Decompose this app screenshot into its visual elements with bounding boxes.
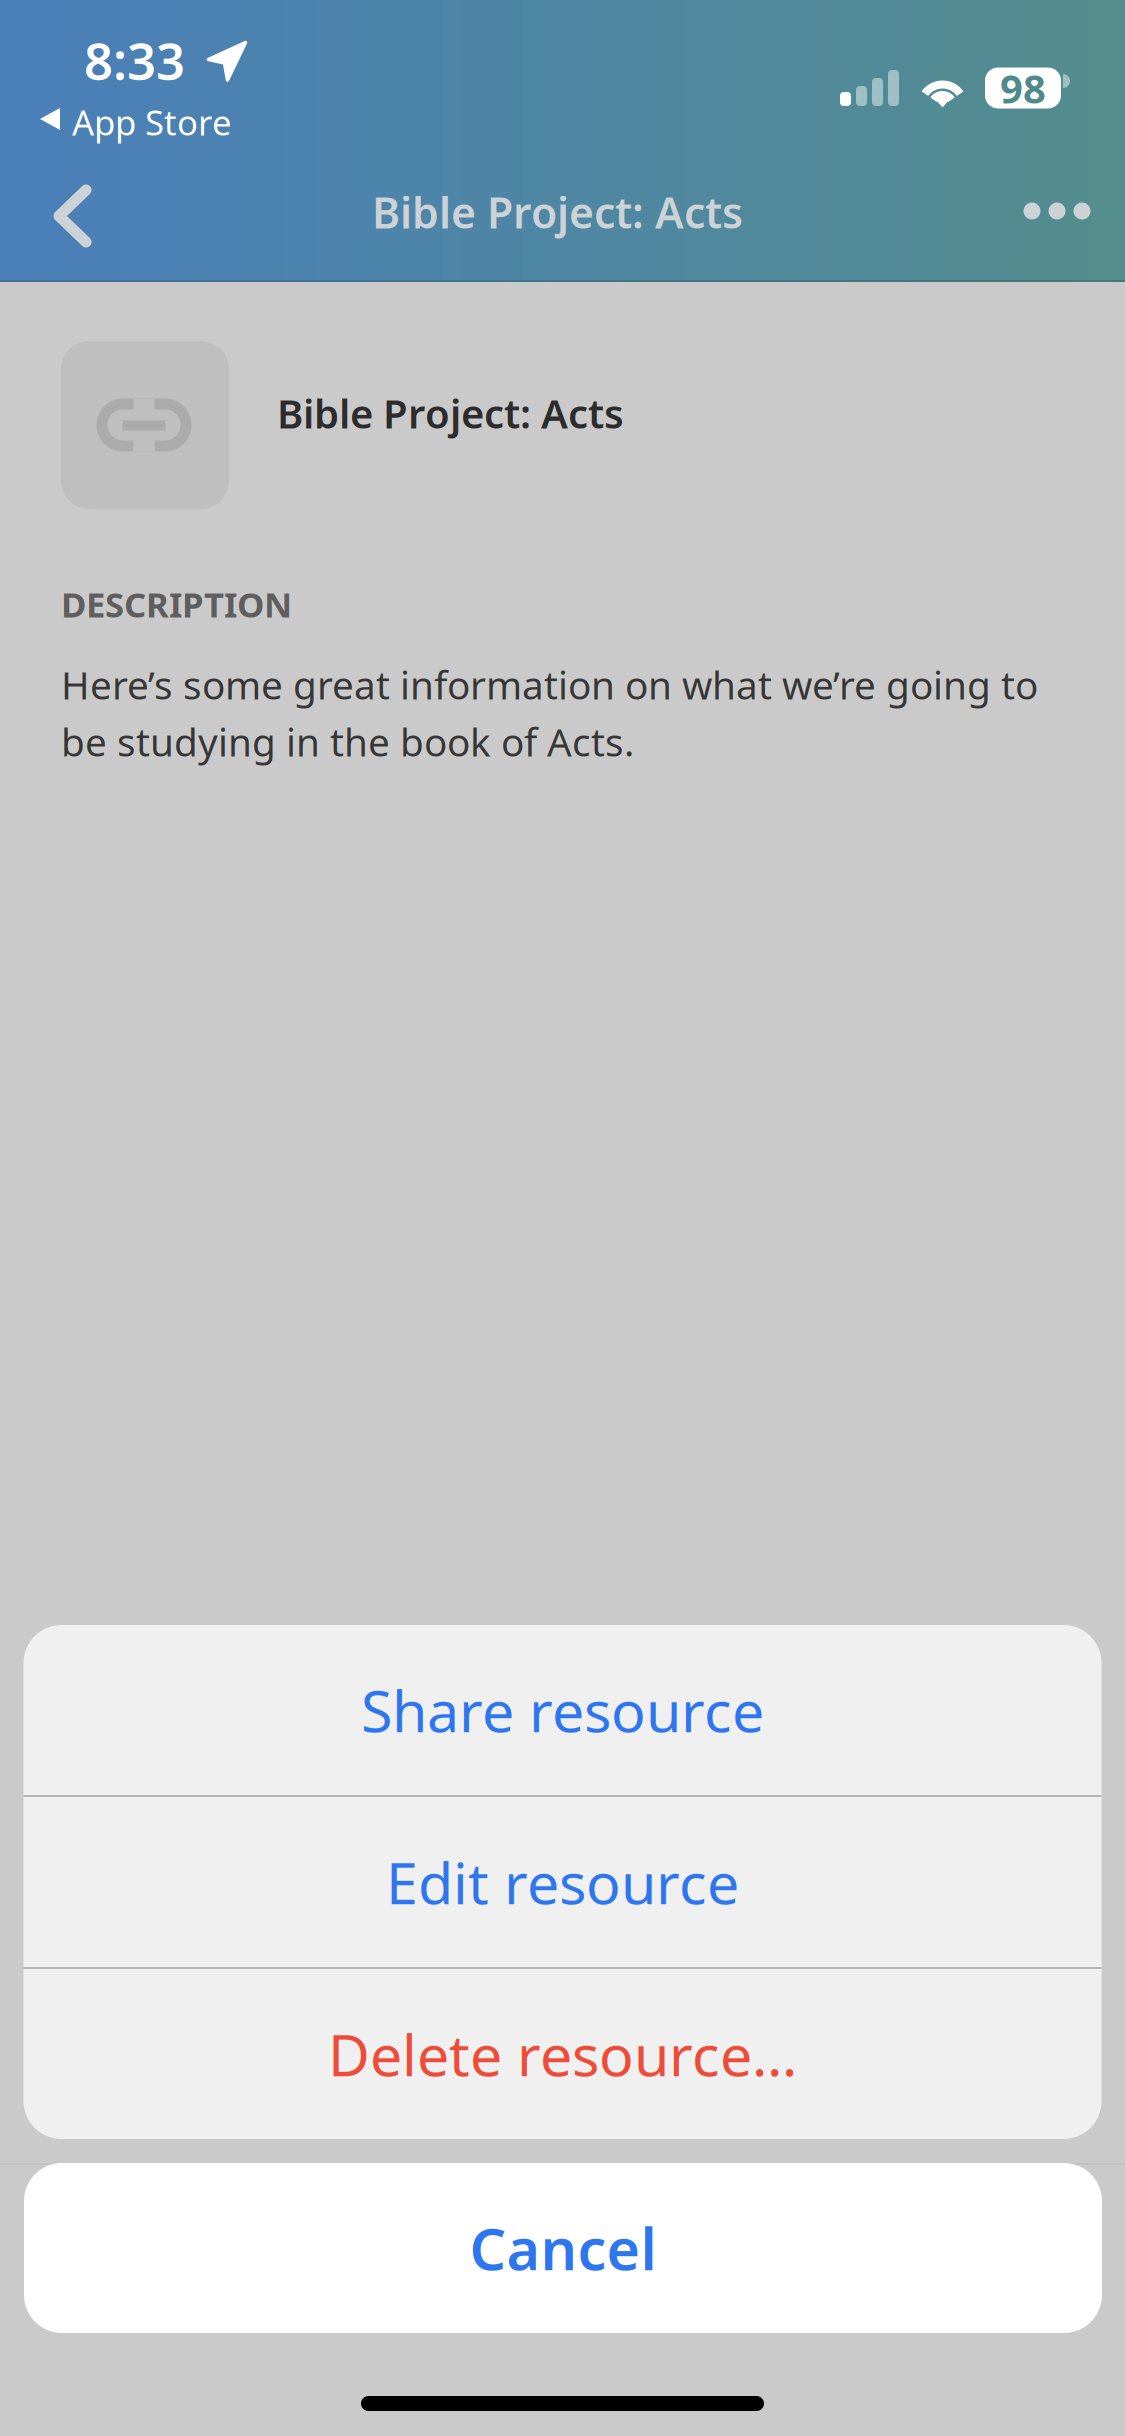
- staticText: Edit resource: [386, 1844, 739, 1920]
- button[interactable]: Delete resource...: [23, 1969, 1101, 2139]
- staticText: Here’s some great information on what we…: [61, 659, 1038, 710]
- staticText: Bible Project: Acts: [277, 386, 624, 439]
- button[interactable]: Edit resource: [23, 1797, 1101, 1967]
- button[interactable]: More options: [985, 155, 1125, 267]
- button[interactable]: Share resource: [23, 1625, 1101, 1795]
- staticText: App Store: [72, 99, 232, 145]
- staticText: DESCRIPTION: [61, 581, 292, 627]
- staticText: Cancel: [469, 2210, 656, 2286]
- staticText: Bible Project: Acts: [372, 184, 743, 240]
- staticText: 98: [1000, 61, 1046, 114]
- button[interactable]: Back: [0, 161, 136, 271]
- button[interactable]: Cancel: [24, 2163, 1102, 2333]
- staticText: Delete resource...: [328, 2016, 797, 2092]
- staticText: Share resource: [361, 1672, 764, 1748]
- staticText: 8:33: [84, 26, 185, 94]
- staticText: be studying in the book of Acts.: [61, 716, 634, 767]
